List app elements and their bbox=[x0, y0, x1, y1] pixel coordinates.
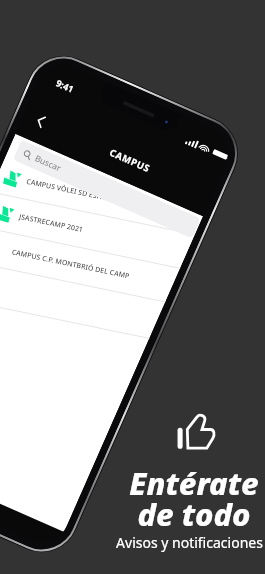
staticText: Avisos y notificaciones bbox=[116, 533, 263, 552]
staticText: Entérate de todo bbox=[129, 462, 259, 535]
button[interactable]: JSASTRECAMP 2021 bbox=[0, 154, 195, 306]
button[interactable] bbox=[28, 108, 54, 134]
staticText: Buscar bbox=[33, 152, 63, 175]
button[interactable]: CAMPUS C.P. MONTBRIÓ DEL CAMP bbox=[0, 189, 180, 339]
button[interactable]: Buscar bbox=[13, 140, 201, 239]
staticText: 9:41 bbox=[54, 76, 76, 95]
button[interactable]: CAMPUS VÒLEI SD ESPANYOL bbox=[0, 120, 208, 274]
staticText: CAMPUS VÒLEI SD ESPANYOL bbox=[24, 158, 127, 226]
staticText: CAMPUS bbox=[107, 146, 152, 175]
staticText: CAMPUS C.P. MONTBRIÓ DEL CAMP bbox=[9, 224, 132, 304]
staticText: JSASTRECAMP 2021 bbox=[16, 200, 86, 247]
